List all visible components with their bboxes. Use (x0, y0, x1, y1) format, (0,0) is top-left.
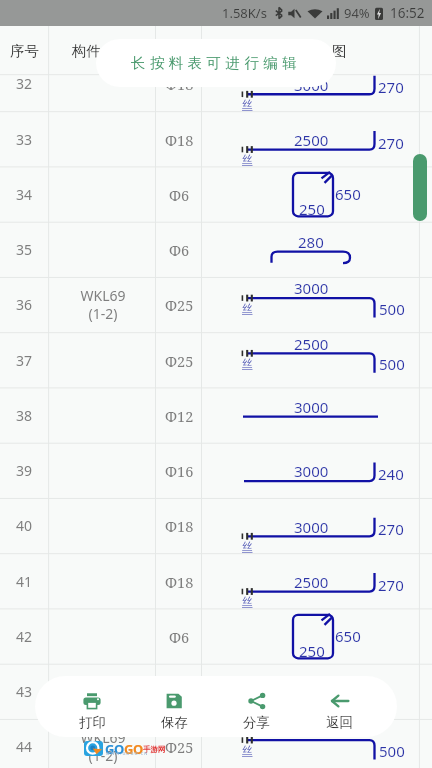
staticText: Φ25 (165, 351, 194, 371)
staticText: 240 (378, 464, 404, 484)
staticText: 3000 (294, 461, 329, 481)
staticText: 33 (16, 130, 33, 149)
staticText: WKL69 (1-2) (80, 728, 126, 765)
staticText: W W W . G O G O . C N (106, 751, 148, 756)
staticText: WKL69 (1-2) (80, 286, 126, 323)
staticText: 分享 (243, 714, 270, 731)
staticText: 270 (378, 575, 404, 595)
button[interactable]: 返回 (298, 676, 381, 737)
staticText: 270 (378, 77, 404, 97)
staticText: 270 (378, 133, 404, 153)
staticText: Φ6 (169, 627, 190, 647)
staticText: 40 (16, 516, 33, 535)
staticText: 2500 (294, 334, 329, 354)
staticText: 1.58K/s (222, 4, 267, 22)
staticText: 长按料表可进行编辑 (131, 54, 302, 72)
staticText: 270 (378, 519, 404, 539)
staticText: 37 (16, 351, 33, 370)
staticText: 250 (299, 641, 325, 661)
staticText: GO (105, 740, 124, 758)
staticText: 丝 (242, 357, 253, 370)
staticText: 丝 (242, 302, 253, 315)
staticText: Φ25 (165, 295, 194, 315)
staticText: 构件 (72, 42, 101, 60)
staticText: 2500 (294, 130, 329, 150)
staticText: Φ25 (165, 737, 194, 757)
staticText: 16:52 (390, 4, 425, 22)
staticText: GO (124, 740, 143, 758)
button[interactable]: 分享 (215, 676, 298, 737)
staticText: 3000 (294, 397, 329, 417)
staticText: 2500 (294, 572, 329, 592)
staticText: 返回 (326, 714, 353, 731)
staticText: 保存 (161, 714, 188, 731)
staticText: 36 (16, 295, 33, 314)
staticText: 280 (298, 232, 324, 252)
staticText: 3000 (294, 75, 329, 95)
staticText: 500 (379, 299, 405, 319)
staticText: 500 (379, 741, 405, 761)
staticText: 94% (344, 4, 370, 22)
staticText: 34 (16, 185, 33, 204)
staticText: 650 (335, 184, 361, 204)
staticText: 43 (16, 682, 33, 701)
staticText: Φ16 (165, 461, 194, 481)
staticText: Φ18 (165, 516, 194, 536)
staticText: 3000 (294, 278, 329, 298)
staticText: 序号 (10, 42, 39, 60)
staticText: 手游网 (143, 745, 166, 754)
staticText: 38 (16, 406, 33, 425)
staticText: 250 (299, 199, 325, 219)
staticText: 32 (16, 74, 33, 93)
staticText: 42 (16, 627, 33, 646)
staticText: Φ18 (165, 130, 194, 150)
staticText: 41 (16, 572, 33, 591)
staticText: 44 (16, 737, 33, 756)
staticText: 35 (16, 240, 33, 259)
staticText: Φ6 (169, 240, 190, 260)
staticText: 丝 (242, 595, 253, 608)
staticText: 打印 (79, 714, 106, 731)
staticText: 丝 (242, 153, 253, 166)
staticText: Φ18 (165, 74, 194, 94)
staticText: Φ18 (165, 572, 194, 592)
staticText: 650 (335, 626, 361, 646)
staticText: 3000 (294, 517, 329, 537)
staticText: 39 (16, 461, 33, 480)
staticText: 图 (332, 42, 347, 60)
staticText: 丝 (242, 540, 253, 553)
staticText: 丝 (242, 98, 253, 111)
staticText: Φ12 (165, 406, 194, 426)
staticText: Φ6 (169, 185, 190, 205)
staticText: 丝 (242, 744, 253, 757)
staticText: 500 (379, 354, 405, 374)
button[interactable]: 打印 (51, 676, 133, 737)
button[interactable]: 保存 (133, 676, 215, 737)
